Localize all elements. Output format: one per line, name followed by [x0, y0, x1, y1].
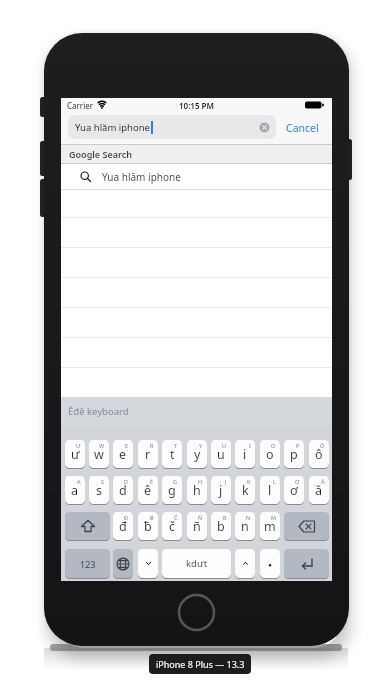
staticText: Yua hlăm iphone [75, 121, 150, 134]
staticText: e [119, 446, 127, 463]
staticText: G [173, 478, 178, 485]
staticText: u [217, 446, 225, 463]
button[interactable]: u [211, 440, 231, 468]
button[interactable]: ơ [284, 476, 304, 504]
button[interactable] [235, 549, 255, 578]
staticText: Ư [76, 442, 81, 449]
button[interactable]: Yua hlăm iphone [68, 115, 276, 139]
staticText: j [219, 482, 223, 499]
staticText: đ [119, 518, 127, 535]
staticText: O [271, 442, 276, 449]
staticText: A [77, 478, 81, 485]
button[interactable]: h [187, 476, 207, 504]
button[interactable]: n [235, 512, 255, 540]
button[interactable]: Yua hlăm iphone [61, 164, 332, 190]
staticText: i [243, 446, 247, 463]
button[interactable]: i [235, 440, 255, 468]
button[interactable] [260, 549, 280, 578]
staticText: 123 [80, 558, 96, 570]
staticText: n [241, 518, 249, 535]
staticText: ñ [193, 518, 201, 535]
staticText: Êđê keyboard [68, 405, 129, 418]
staticText: s [96, 482, 102, 499]
staticText: kdưt [186, 557, 208, 570]
staticText: Y [199, 442, 203, 449]
staticText: ê [144, 482, 152, 499]
staticText: d [119, 482, 127, 499]
button[interactable] [284, 512, 329, 540]
staticText: k [242, 482, 249, 499]
staticText: N [246, 514, 251, 521]
button[interactable]: j [211, 476, 231, 504]
button[interactable]: t [162, 440, 182, 468]
button[interactable]: l [260, 476, 280, 504]
staticText: R [150, 442, 154, 449]
button[interactable]: y [187, 440, 207, 468]
button[interactable]: č [162, 512, 182, 540]
button[interactable]: p [284, 440, 304, 468]
button[interactable]: a [65, 476, 85, 504]
button[interactable]: k [235, 476, 255, 504]
button[interactable]: ê [138, 476, 158, 504]
staticText: W [99, 442, 105, 449]
staticText: g [168, 482, 176, 499]
staticText: ƀ [144, 518, 152, 535]
staticText: H [198, 478, 203, 485]
staticText: ă [315, 482, 323, 499]
button[interactable]: 123 [65, 549, 110, 578]
button[interactable] [138, 549, 158, 578]
staticText: Č [174, 514, 178, 521]
staticText: m [264, 518, 276, 535]
button[interactable]: d [113, 476, 133, 504]
staticText: ô [315, 446, 323, 463]
staticText: w [94, 446, 104, 463]
button[interactable]: o [260, 440, 280, 468]
button[interactable] [284, 549, 329, 578]
staticText: Ă [321, 478, 325, 485]
staticText: Google Search [69, 148, 132, 160]
staticText: E [125, 442, 129, 449]
button[interactable]: e [113, 440, 133, 468]
button[interactable]: kdưt [162, 549, 231, 578]
staticText: l [268, 482, 272, 499]
staticText: L [273, 478, 276, 485]
button[interactable]: ô [309, 440, 329, 468]
staticText: b [217, 518, 225, 535]
staticText: č [169, 518, 176, 535]
staticText: Carrier [67, 100, 94, 111]
button[interactable]: w [89, 440, 109, 468]
button[interactable]: b [211, 512, 231, 540]
staticText: a [71, 482, 79, 499]
staticText: h [193, 482, 201, 499]
button[interactable]: r [138, 440, 158, 468]
staticText: o [266, 446, 274, 463]
button[interactable]: ư [65, 440, 85, 468]
button[interactable]: s [89, 476, 109, 504]
staticText: ư [71, 446, 80, 463]
staticText: t [170, 446, 175, 463]
staticText: I [249, 442, 251, 449]
staticText: K [247, 478, 251, 485]
button[interactable]: m [260, 512, 280, 540]
staticText: J [225, 478, 227, 485]
staticText: iPhone 8 Plus — 13.3 [156, 658, 245, 670]
staticText: Cancel [286, 121, 319, 135]
staticText: D [124, 478, 129, 485]
button[interactable]: Cancel [286, 112, 319, 144]
staticText: M [271, 514, 276, 521]
staticText: Ñ [198, 514, 203, 521]
staticText: Ơ [295, 478, 300, 485]
button[interactable]: ñ [187, 512, 207, 540]
button[interactable]: ă [309, 476, 329, 504]
button[interactable]: đ [113, 512, 133, 540]
staticText: P [296, 442, 300, 449]
staticText: S [101, 478, 105, 485]
staticText: r [145, 446, 151, 463]
button[interactable]: ƀ [138, 512, 158, 540]
button[interactable] [113, 549, 133, 578]
button[interactable] [65, 512, 110, 540]
staticText: U [222, 442, 227, 449]
button[interactable]: g [162, 476, 182, 504]
staticText: B [223, 514, 227, 521]
staticText: ơ [290, 482, 298, 499]
